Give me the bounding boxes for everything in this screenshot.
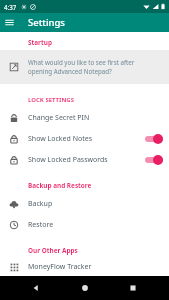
staticText: Backup <box>28 199 159 209</box>
staticText: What would you like to see first after o… <box>28 58 159 76</box>
button[interactable]: What would you like to see first after o… <box>0 50 169 84</box>
staticText: Our Other Apps <box>28 246 78 255</box>
button[interactable]: Restore <box>0 214 169 235</box>
staticText: Show Locked Passwords <box>28 155 139 165</box>
button[interactable]: MoneyFlow Tracker <box>0 258 169 276</box>
staticText: LOCK SETTINGS <box>28 96 74 104</box>
staticText: Backup and Restore <box>28 181 92 190</box>
button[interactable]: Backup <box>0 193 169 214</box>
button[interactable]: Change Secret PIN <box>0 107 169 128</box>
staticText: 4:37 <box>4 3 17 11</box>
button[interactable]: Show Locked Notes <box>0 128 169 149</box>
staticText: Restore <box>28 220 159 230</box>
staticText: Startup <box>28 38 52 47</box>
staticText: Show Locked Notes <box>28 134 139 144</box>
staticText: Change Secret PIN <box>28 113 159 123</box>
staticText: MoneyFlow Tracker <box>28 262 159 272</box>
button[interactable]: Back <box>24 276 48 300</box>
button[interactable]: Recent apps <box>121 276 145 300</box>
button[interactable]: Show Locked Passwords <box>0 149 169 170</box>
button[interactable]: Open navigation menu <box>0 13 19 32</box>
button[interactable]: Home <box>73 276 97 300</box>
staticText: Settings <box>28 16 65 29</box>
